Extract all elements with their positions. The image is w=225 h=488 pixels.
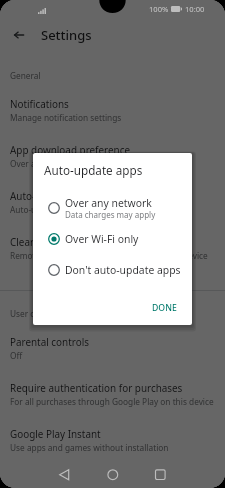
button[interactable]: Notifications (0, 88, 225, 134)
staticText: For all purchases through Google Play on… (10, 396, 214, 407)
button[interactable]: Over Wi-Fi only (33, 224, 192, 254)
button[interactable]: Back (51, 462, 77, 488)
button[interactable]: Parental controls (0, 326, 225, 372)
button[interactable]: App download preference (0, 134, 225, 180)
staticText: Over Wi-Fi only (65, 232, 139, 246)
button[interactable]: Back (8, 24, 30, 46)
staticText: Settings (41, 26, 92, 44)
staticText: Over any network (65, 196, 152, 210)
staticText: Parental controls (10, 335, 89, 348)
staticText: Remove the searches you have done on thi… (10, 250, 208, 261)
staticText: DONE (152, 302, 177, 314)
staticText: Google Play Instant (10, 427, 101, 440)
button[interactable]: Over any network (33, 193, 192, 223)
button[interactable]: Home (99, 462, 125, 488)
staticText: 10:00 (185, 4, 205, 14)
staticText: Notifications (10, 97, 69, 110)
button[interactable]: Auto-update apps (0, 180, 225, 226)
staticText: Manage notification settings (10, 112, 122, 123)
staticText: Over any network (10, 158, 80, 169)
staticText: Auto-update apps over Wi-Fi only (10, 204, 139, 215)
button[interactable]: Clear local search history (0, 226, 225, 272)
staticText: Data charges may apply (65, 209, 156, 220)
staticText: 100% (149, 4, 169, 14)
button[interactable]: Require authentication for purchases (0, 372, 225, 418)
staticText: Auto-update apps (10, 189, 94, 202)
staticText: Off (10, 350, 23, 361)
button[interactable]: Google Play Instant (0, 418, 225, 464)
staticText: App download preference (10, 143, 130, 156)
button[interactable]: Don't auto-update apps (33, 255, 192, 285)
button[interactable]: Recent apps (147, 462, 173, 488)
button[interactable]: DONE (144, 295, 185, 321)
staticText: User controls (10, 308, 62, 319)
staticText: Don't auto-update apps (65, 263, 181, 277)
staticText: Clear local search history (10, 235, 126, 248)
staticText: Auto-update apps (44, 162, 143, 178)
staticText: Use apps and games without installation (10, 442, 169, 453)
staticText: General (10, 70, 41, 81)
staticText: Require authentication for purchases (10, 381, 183, 394)
